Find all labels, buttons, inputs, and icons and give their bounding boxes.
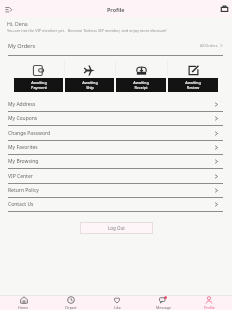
button[interactable]: Awaiting Review — [168, 56, 218, 92]
staticText: VIP Center — [8, 173, 33, 180]
button[interactable]: Contact Us — [0, 198, 232, 211]
button[interactable]: Awaiting Receipt — [116, 56, 166, 92]
button[interactable]: My Orders — [0, 33, 232, 55]
staticText: My Browsing — [8, 158, 39, 165]
staticText: Awaiting Payment — [31, 80, 47, 90]
staticText: Change Password — [8, 130, 50, 137]
staticText: My Favorites — [8, 144, 38, 151]
staticText: Depart — [65, 305, 77, 310]
button[interactable]: My Favorites — [0, 141, 232, 154]
button[interactable]: Return Policy — [0, 184, 232, 197]
button[interactable]: Like — [94, 296, 140, 310]
staticText: All Orders — [200, 43, 218, 48]
staticText: Home — [18, 305, 29, 310]
button[interactable]: My Browsing — [0, 155, 232, 168]
staticText: Return Policy — [8, 187, 39, 194]
staticText: Like — [114, 305, 121, 310]
button[interactable]: VIP Center — [0, 169, 232, 183]
staticText: My Coupons — [8, 115, 38, 122]
button[interactable]: Depart — [47, 296, 94, 310]
staticText: Hi, Dena — [7, 20, 28, 27]
button[interactable]: My Coupons — [0, 112, 232, 125]
button[interactable]: Shopping bag — [219, 3, 230, 14]
button[interactable]: Log Out — [80, 222, 153, 234]
staticText: Log Out — [108, 225, 125, 231]
button[interactable]: Message — [140, 296, 186, 310]
staticText: Profile — [204, 305, 215, 310]
button[interactable]: My Address — [0, 98, 232, 111]
staticText: My Address — [8, 101, 36, 108]
staticText: Contact Us — [8, 201, 34, 208]
button[interactable]: Awaiting Payment — [14, 56, 63, 92]
button[interactable]: Awaiting Ship — [65, 56, 114, 92]
staticText: Profile — [107, 6, 125, 13]
staticText: My Orders — [8, 42, 36, 49]
button[interactable]: Menu — [2, 2, 15, 15]
staticText: Awaiting Receipt — [133, 80, 149, 90]
button[interactable]: Change Password — [0, 126, 232, 140]
staticText: Awaiting Ship — [82, 80, 98, 90]
staticText: Awaiting Review — [185, 80, 201, 90]
staticText: You are not the VIP member yet. Become T… — [7, 28, 167, 33]
button[interactable]: Home — [0, 296, 47, 310]
staticText: Message — [156, 305, 171, 310]
button[interactable]: Profile — [186, 296, 232, 310]
